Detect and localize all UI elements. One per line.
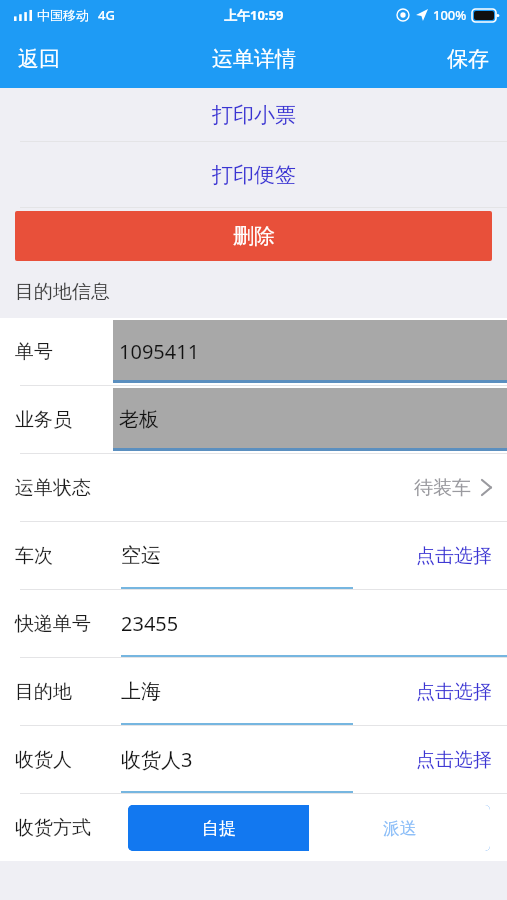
staticText: 单号: [15, 340, 113, 364]
button[interactable]: 自提: [128, 805, 309, 851]
staticText: 100%: [433, 6, 467, 24]
button[interactable]: 打印小票: [0, 88, 507, 141]
staticText: 业务员: [15, 408, 113, 432]
staticText: 运单详情: [212, 46, 296, 72]
staticText: 上海: [121, 679, 161, 704]
button[interactable]: 快递单号: [0, 590, 507, 657]
staticText: 1095411: [119, 338, 200, 365]
staticText: 快递单号: [15, 612, 113, 636]
staticText: 中国移动: [37, 7, 89, 23]
staticText: 4G: [98, 6, 115, 24]
staticText: 老板: [119, 407, 159, 432]
staticText: 待装车: [414, 476, 471, 500]
staticText: 收货人3: [121, 746, 193, 773]
staticText: 收货方式: [15, 816, 113, 840]
button[interactable]: 打印便签: [0, 142, 507, 207]
staticText: 返回: [18, 46, 60, 72]
button[interactable]: 收货人: [0, 726, 507, 793]
staticText: 自提: [202, 818, 236, 839]
staticText: 运单状态: [15, 476, 113, 500]
button[interactable]: 车次: [0, 522, 507, 589]
staticText: 删除: [233, 223, 275, 249]
staticText: 点击选择: [416, 748, 492, 772]
staticText: 派送: [383, 818, 417, 839]
button[interactable]: 派送: [309, 805, 490, 851]
button[interactable]: 目的地: [0, 658, 507, 725]
staticText: 上午10:59: [224, 6, 284, 24]
staticText: 打印小票: [212, 102, 296, 128]
button[interactable]: 删除: [15, 211, 492, 261]
staticText: 打印便签: [212, 162, 296, 188]
staticText: 目的地信息: [15, 280, 110, 304]
staticText: 目的地: [15, 680, 113, 704]
staticText: 点击选择: [416, 544, 492, 568]
staticText: 空运: [121, 543, 161, 568]
staticText: 点击选择: [416, 680, 492, 704]
staticText: 车次: [15, 544, 113, 568]
staticText: 收货人: [15, 748, 113, 772]
other: 选择运单状态: [481, 478, 492, 497]
staticText: 23455: [121, 610, 179, 637]
button[interactable]: 单号: [0, 318, 507, 385]
staticText: 保存: [447, 46, 489, 72]
button[interactable]: 业务员: [0, 386, 507, 453]
button[interactable]: 运单状态: [0, 454, 507, 521]
button[interactable]: 返回: [0, 30, 78, 88]
button[interactable]: 保存: [429, 30, 507, 88]
